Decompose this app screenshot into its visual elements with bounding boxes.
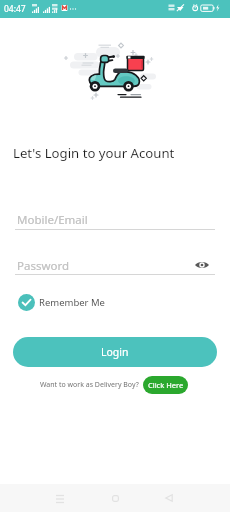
- staticText: Password: [17, 258, 70, 274]
- staticText: Remember Me: [39, 296, 105, 309]
- staticText: Let's Login to your Acount: [13, 144, 175, 162]
- staticText: Click Here: [148, 380, 184, 390]
- button[interactable]: Click Here: [143, 376, 188, 394]
- button[interactable]: Login: [13, 337, 217, 367]
- button[interactable]: Recents: [43, 484, 77, 512]
- staticText: Want to work as Delivery Boy?: [40, 380, 139, 390]
- staticText: 04:47: [4, 3, 26, 15]
- button[interactable]: Show password: [191, 256, 213, 274]
- button[interactable]: Remember Me: [18, 294, 105, 311]
- staticText: Mobile/Email: [17, 212, 88, 228]
- staticText: Login: [101, 345, 129, 359]
